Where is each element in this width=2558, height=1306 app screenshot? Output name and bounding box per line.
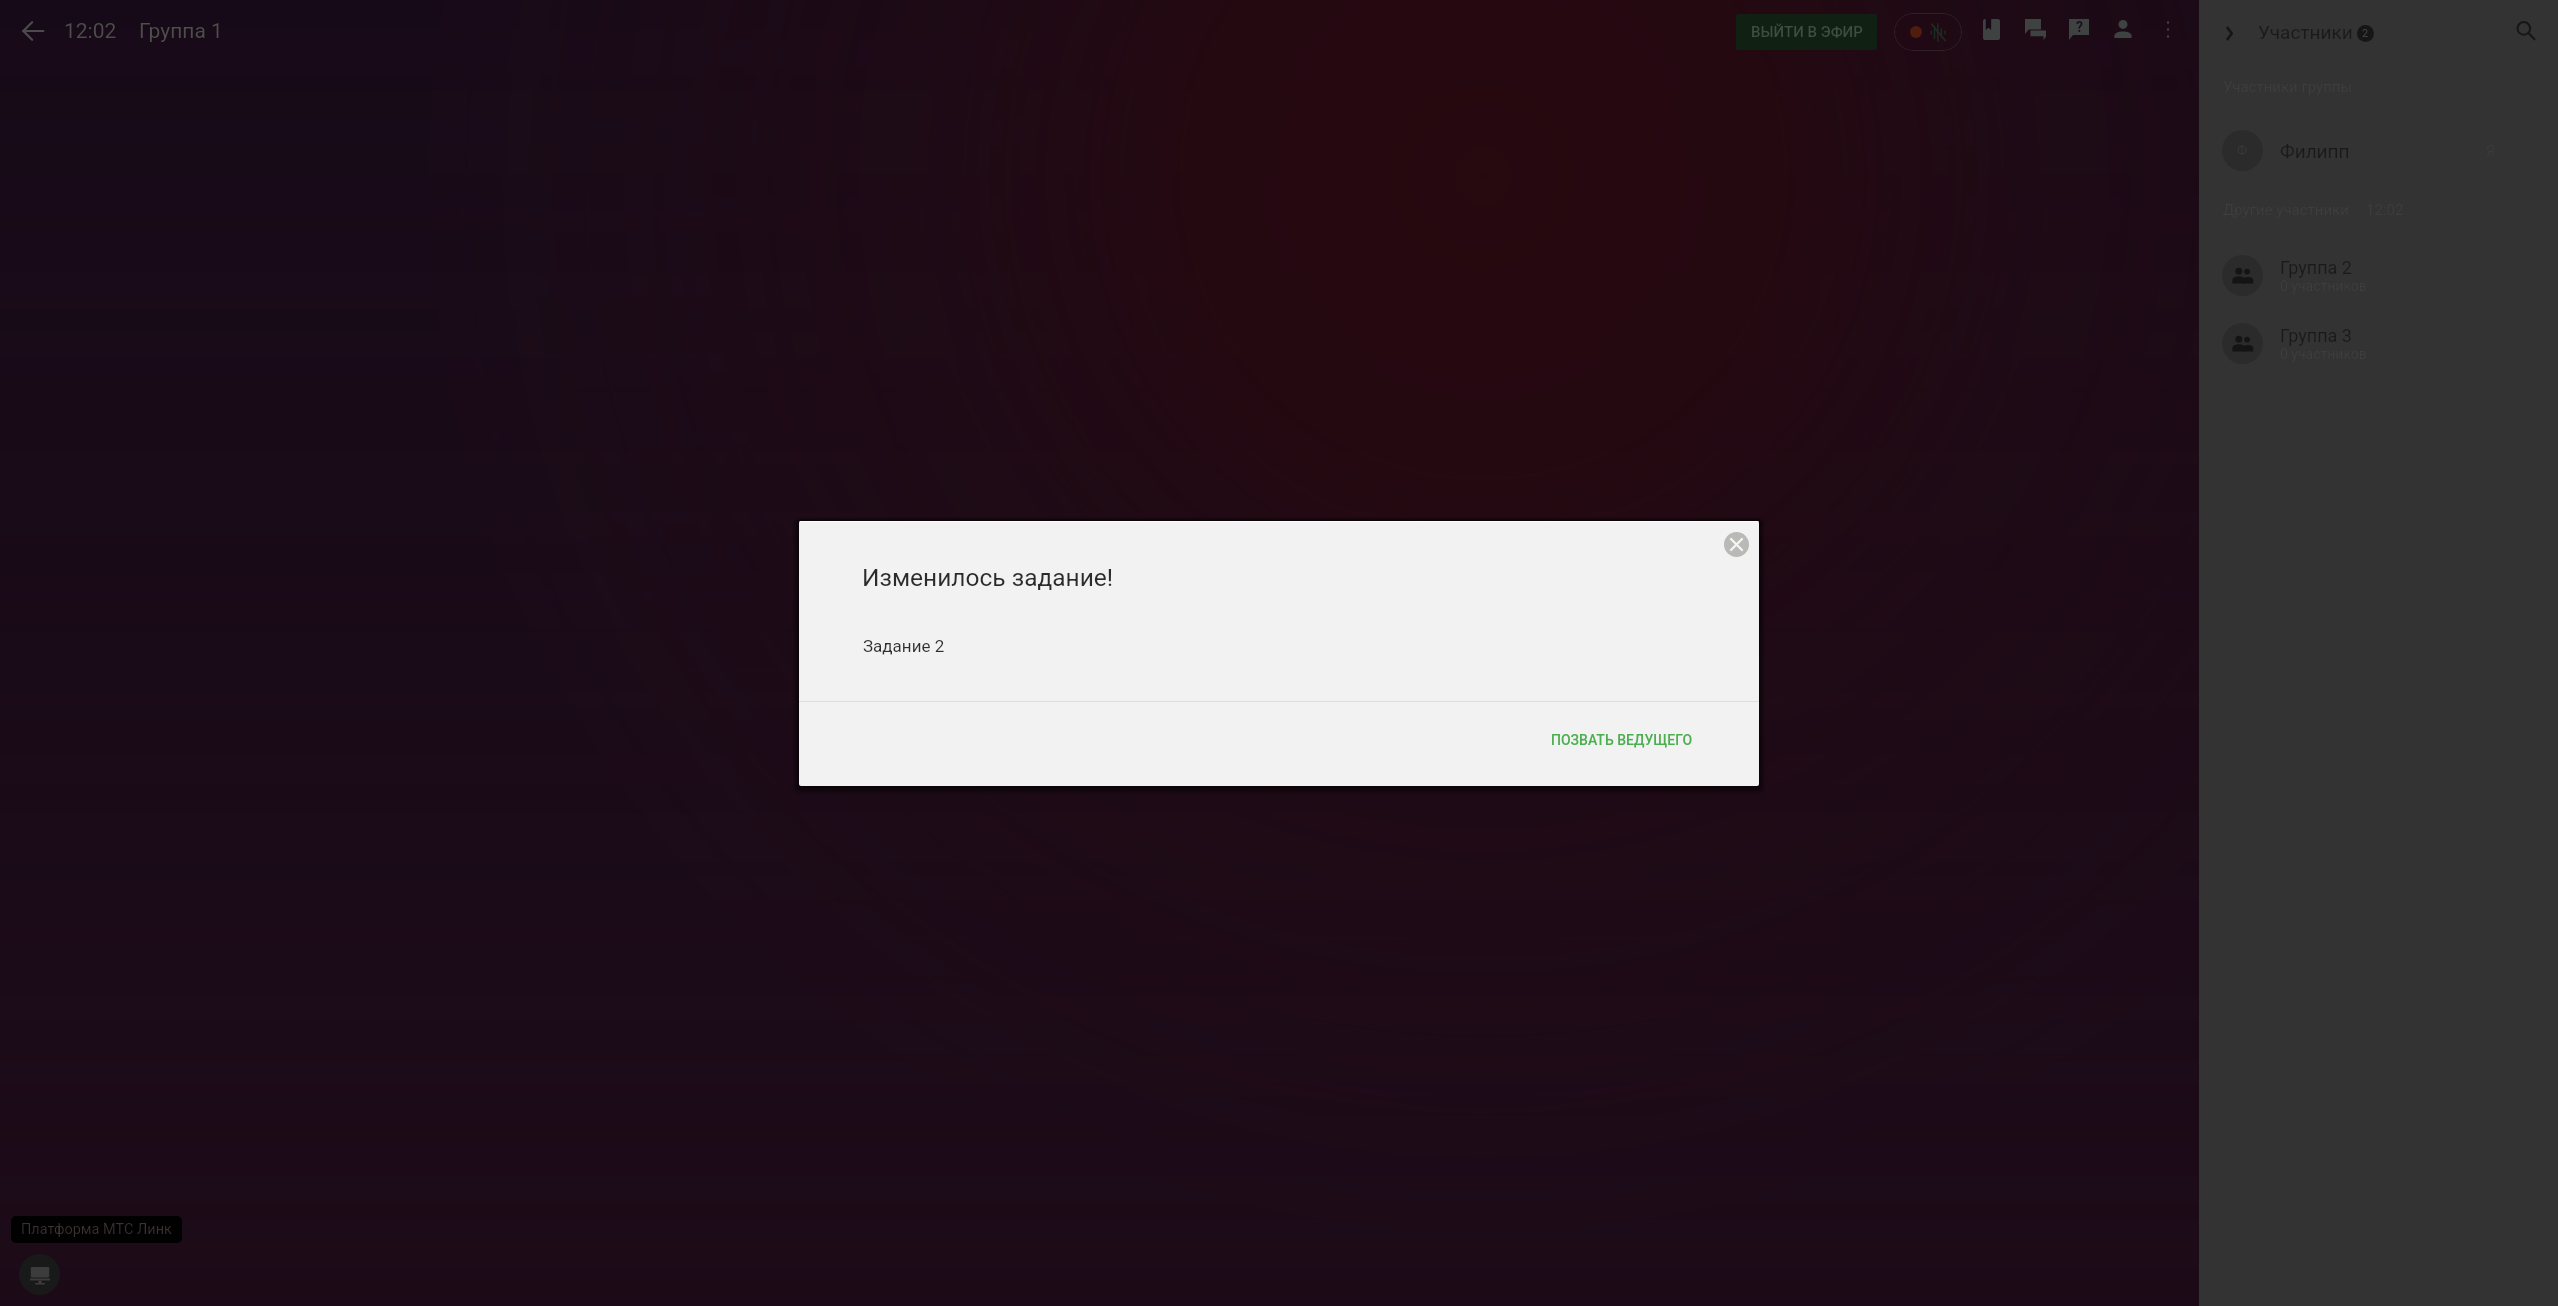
- staticText: 12:02: [64, 19, 117, 44]
- staticText: Ф: [2237, 143, 2248, 158]
- staticText: ?: [2076, 19, 2083, 35]
- button[interactable]: Back: [10, 8, 56, 54]
- button[interactable]: Share screen: [19, 1254, 60, 1295]
- staticText: ПОЗВАТЬ ВЕДУЩЕГО: [1551, 732, 1693, 748]
- staticText: Участники группы: [2223, 78, 2353, 96]
- staticText: 2: [2362, 27, 2369, 40]
- button[interactable]: Search: [2507, 12, 2543, 48]
- staticText: Участники: [2258, 21, 2353, 43]
- button[interactable]: Close: [1724, 532, 1749, 557]
- staticText: 0 участников: [2280, 346, 2367, 362]
- staticText: Изменилось задание!: [862, 563, 1114, 592]
- staticText: Группа 3: [2280, 325, 2352, 346]
- button[interactable]: Recording: [1894, 13, 1962, 51]
- staticText: Филипп: [2280, 140, 2350, 162]
- staticText: Группа 1: [139, 19, 223, 44]
- button[interactable]: More options: [2148, 9, 2188, 49]
- staticText: ВЫЙТИ В ЭФИР: [1751, 23, 1863, 41]
- button[interactable]: Ф: [2199, 126, 2558, 175]
- staticText: 0 участников: [2280, 278, 2367, 294]
- staticText: Группа 2: [2280, 257, 2352, 278]
- staticText: Платформа МТС Линк: [21, 1221, 172, 1238]
- button[interactable]: Chat: [2015, 9, 2055, 49]
- button[interactable]: ПОЗВАТЬ ВЕДУЩЕГО: [1537, 723, 1707, 757]
- button[interactable]: Collapse panel: [2215, 19, 2243, 47]
- staticText: Задание 2: [863, 636, 945, 656]
- button[interactable]: Participants: [2103, 9, 2143, 49]
- button[interactable]: ВЫЙТИ В ЭФИР: [1736, 14, 1877, 50]
- button[interactable]: Help: [2059, 9, 2099, 49]
- staticText: Другие участники: [2223, 201, 2349, 219]
- button[interactable]: Группа 2: [2199, 251, 2558, 299]
- button[interactable]: Группа 3: [2199, 319, 2558, 367]
- button[interactable]: Materials: [1971, 9, 2011, 49]
